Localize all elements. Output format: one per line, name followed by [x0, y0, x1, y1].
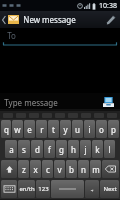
- staticText: t: [52, 124, 55, 135]
- button[interactable]: h: [68, 140, 79, 158]
- button[interactable]: Type message: [4, 93, 100, 111]
- staticText: e: [27, 124, 32, 135]
- button[interactable]: Delete: [102, 160, 119, 178]
- staticText: d: [35, 144, 40, 155]
- staticText: v: [57, 164, 62, 175]
- button[interactable]: Compose: [102, 11, 120, 28]
- staticText: 123: [38, 185, 49, 193]
- staticText: h: [71, 144, 76, 155]
- button[interactable]: t: [48, 120, 59, 138]
- staticText: j: [84, 144, 87, 155]
- staticText: f: [48, 144, 51, 155]
- button[interactable]: 123: [36, 180, 50, 198]
- staticText: g: [59, 144, 64, 155]
- button[interactable]: i: [84, 120, 95, 138]
- button[interactable]: e: [24, 120, 35, 138]
- button[interactable]: r: [36, 120, 47, 138]
- button[interactable]: f: [44, 140, 55, 158]
- button[interactable]: j: [80, 140, 91, 158]
- button[interactable]: p: [108, 120, 119, 138]
- staticText: l: [108, 144, 111, 155]
- button[interactable]: To: [0, 28, 120, 46]
- staticText: c: [46, 164, 50, 175]
- button[interactable]: v: [54, 160, 65, 178]
- staticText: New message: [23, 14, 76, 25]
- staticText: x: [33, 164, 38, 175]
- button[interactable]: u: [72, 120, 83, 138]
- button[interactable]: b: [66, 160, 77, 178]
- staticText: r: [40, 124, 44, 135]
- button[interactable]: Next: [100, 180, 119, 198]
- staticText: i: [88, 124, 91, 135]
- staticText: n: [81, 164, 86, 175]
- staticText: b: [69, 164, 74, 175]
- staticText: m: [92, 164, 100, 175]
- staticText: Type message: [4, 97, 58, 108]
- staticText: q: [4, 124, 9, 135]
- button[interactable]: .,: [85, 180, 99, 198]
- staticText: .,: [90, 185, 94, 193]
- button[interactable]: a: [5, 140, 17, 158]
- button[interactable]: m: [90, 160, 101, 178]
- staticText: w: [14, 124, 21, 135]
- staticText: Next: [103, 185, 117, 193]
- staticText: 10:38: [99, 1, 117, 11]
- button[interactable]: x: [30, 160, 41, 178]
- button[interactable]: k: [92, 140, 103, 158]
- button[interactable]: Navigate up: [0, 11, 21, 28]
- button[interactable]: y: [60, 120, 71, 138]
- button[interactable]: g: [56, 140, 67, 158]
- button[interactable]: q: [1, 120, 11, 138]
- staticText: o: [99, 124, 104, 135]
- staticText: To: [7, 30, 16, 41]
- staticText: p: [111, 124, 116, 135]
- staticText: en/th: [19, 185, 35, 193]
- button[interactable]: l: [104, 140, 115, 158]
- staticText: z: [22, 164, 26, 175]
- button[interactable]: d: [31, 140, 43, 158]
- button[interactable]: n: [78, 160, 89, 178]
- staticText: y: [63, 124, 68, 135]
- button[interactable]: w: [12, 120, 23, 138]
- button[interactable]: Shift: [1, 160, 17, 178]
- button[interactable]: c: [42, 160, 53, 178]
- staticText: a: [9, 144, 14, 155]
- button[interactable]: z: [18, 160, 29, 178]
- button[interactable]: Keyboard settings: [1, 180, 17, 198]
- staticText: s: [22, 144, 26, 155]
- button[interactable]: en/th: [18, 180, 35, 198]
- button[interactable]: Space: [51, 180, 84, 198]
- button[interactable]: s: [18, 140, 30, 158]
- staticText: u: [75, 124, 80, 135]
- button[interactable]: o: [96, 120, 107, 138]
- staticText: k: [95, 144, 100, 155]
- button[interactable]: Send message: [100, 94, 116, 110]
